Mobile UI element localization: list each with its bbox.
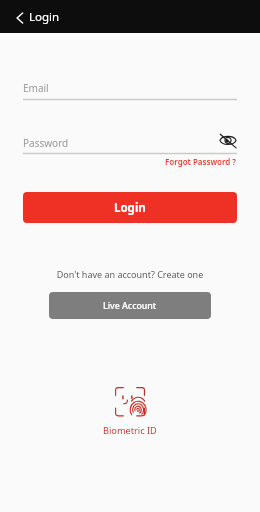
- staticText: Forgot Password ?: [165, 156, 237, 167]
- staticText: Password: [23, 136, 69, 150]
- staticText: Email: [23, 81, 49, 95]
- staticText: Don't have an account? Create one: [0, 268, 260, 280]
- staticText: Login: [29, 9, 60, 25]
- button[interactable]: Live Account: [49, 292, 211, 319]
- button[interactable]: Biometric ID: [0, 387, 260, 437]
- button[interactable]: Forgot Password ?: [165, 156, 237, 167]
- button[interactable]: Show password: [217, 129, 239, 151]
- staticText: Login: [114, 200, 146, 216]
- staticText: Biometric ID: [103, 424, 157, 437]
- button[interactable]: Back: [7, 5, 32, 30]
- staticText: Live Account: [103, 300, 157, 312]
- button[interactable]: Login: [23, 192, 237, 223]
